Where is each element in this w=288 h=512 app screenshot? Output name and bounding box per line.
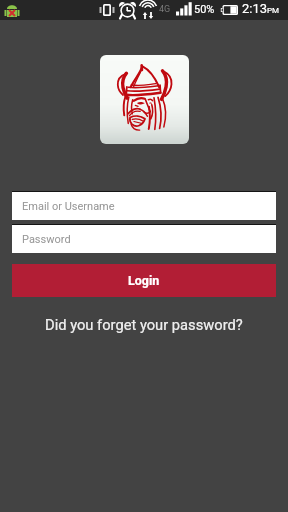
staticText: Password (22, 233, 71, 246)
button[interactable]: Viking app logo (100, 55, 189, 144)
staticText: Email or Username (22, 200, 115, 213)
button[interactable]: Login (12, 264, 276, 297)
button[interactable]: Email or Username (12, 191, 276, 220)
staticText: 50% (194, 3, 215, 16)
staticText: Login (128, 273, 160, 288)
button[interactable]: Did you forget your password? (0, 311, 288, 337)
button[interactable]: Password (12, 224, 276, 253)
staticText: Did you forget your password? (45, 316, 243, 333)
staticText: 4G (159, 4, 171, 15)
staticText: PM (267, 6, 280, 15)
staticText: 2:13 (242, 1, 268, 16)
